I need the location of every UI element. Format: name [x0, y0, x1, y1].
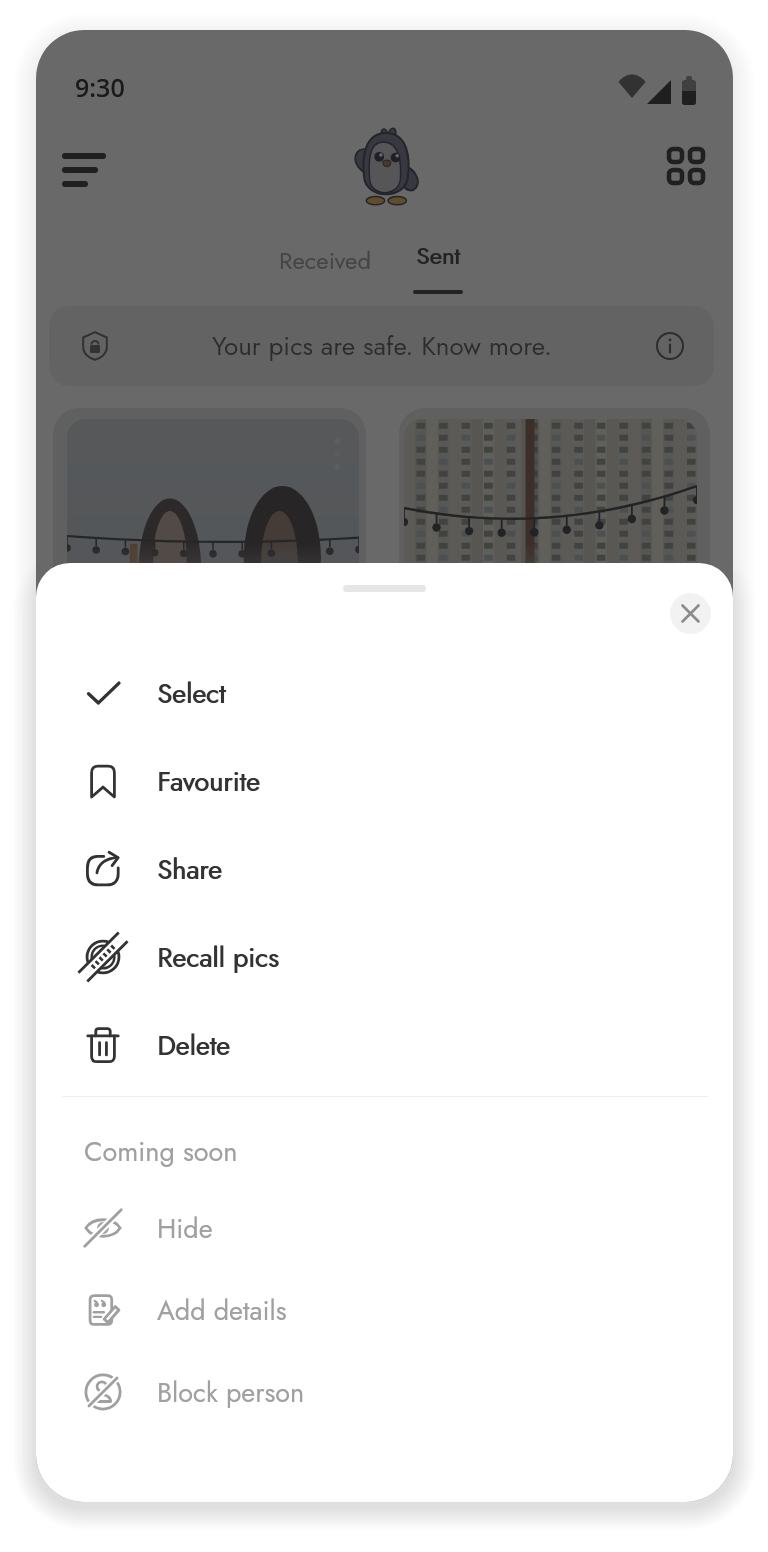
button[interactable]: Delete: [36, 1004, 733, 1086]
button[interactable]: Share: [36, 828, 733, 910]
staticText: Favourite: [158, 762, 261, 801]
staticText: Sent: [416, 238, 460, 273]
staticText: Select: [157, 674, 226, 713]
staticText: Share: [158, 850, 223, 889]
staticText: Add details: [157, 1291, 287, 1330]
button[interactable]: Grid view: [654, 134, 718, 198]
button[interactable]: [399, 408, 710, 738]
staticText: Coming soon: [84, 1132, 238, 1171]
button[interactable]: [53, 408, 366, 738]
button[interactable]: Close: [670, 593, 711, 634]
staticText: Delete: [157, 1026, 230, 1065]
button[interactable]: Block person: [36, 1351, 733, 1433]
staticText: Received: [279, 243, 372, 278]
staticText: Your pics are safe. Know more.: [212, 327, 552, 365]
button[interactable]: Hide: [36, 1187, 733, 1269]
button[interactable]: Add details: [36, 1269, 733, 1351]
staticText: Select: [158, 674, 227, 713]
button[interactable]: Your pics are safe. Know more.: [49, 306, 714, 386]
staticText: 9:30: [75, 70, 125, 104]
staticText: 9:30: [75, 70, 125, 104]
staticText: Delete: [158, 1026, 231, 1065]
staticText: Recall pics: [158, 938, 280, 977]
button[interactable]: Received: [260, 232, 390, 288]
staticText: Block person: [157, 1373, 305, 1412]
button[interactable]: Favourite: [36, 740, 733, 822]
staticText: Favourite: [157, 762, 260, 801]
button[interactable]: Select: [36, 652, 733, 734]
staticText: Hide: [157, 1209, 213, 1248]
staticText: Sent: [417, 238, 461, 273]
button[interactable]: Recall pics: [36, 916, 733, 998]
button[interactable]: Menu: [50, 136, 118, 204]
button[interactable]: Sent: [390, 232, 486, 294]
staticText: Recall pics: [157, 938, 279, 977]
staticText: Share: [157, 850, 222, 889]
